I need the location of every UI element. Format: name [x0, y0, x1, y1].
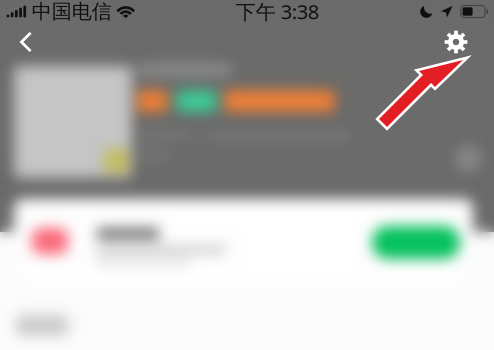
button[interactable]: Offer row [14, 199, 473, 295]
staticText: 中国电信 [32, 0, 112, 24]
button[interactable]: Back [6, 24, 46, 60]
staticText: 下午 3:38 [236, 0, 319, 25]
button[interactable]: Tag [16, 315, 68, 336]
button[interactable]: Settings [436, 24, 476, 60]
button[interactable]: Claim offer [372, 226, 460, 259]
